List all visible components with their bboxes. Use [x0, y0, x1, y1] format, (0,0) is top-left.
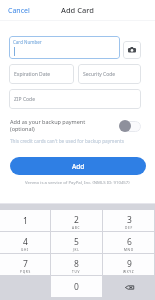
staticText: Venmo is a service of PayPal, Inc. (NMLS… — [25, 179, 130, 185]
staticText: PQRS — [20, 270, 31, 274]
staticText: 3 — [127, 214, 132, 226]
staticText: 1 — [23, 215, 28, 227]
staticText: ZIP Code — [14, 96, 35, 103]
button[interactable]: 9 — [103, 254, 154, 275]
button[interactable]: Backup payment toggle — [119, 120, 142, 132]
button[interactable]: ZIP Code — [9, 89, 141, 109]
button[interactable]: Card Number — [9, 36, 120, 59]
staticText: 9 — [127, 258, 132, 270]
staticText: Cancel — [8, 6, 30, 16]
button[interactable]: 1 — [0, 210, 50, 231]
button[interactable]: 4 — [0, 232, 50, 253]
staticText: Expiration Date — [14, 71, 51, 78]
button[interactable]: 2 — [51, 210, 102, 231]
staticText: 4 — [23, 236, 28, 248]
button[interactable]: Scan card — [123, 41, 141, 59]
staticText: Add — [72, 162, 85, 171]
button[interactable]: Security Code — [78, 64, 141, 84]
button[interactable]: Expiration Date — [9, 64, 74, 84]
staticText: This credit cards can't be used for back… — [10, 138, 124, 144]
staticText: 2 — [74, 214, 79, 226]
button[interactable]: Delete — [103, 276, 155, 298]
staticText: 8 — [74, 258, 79, 270]
staticText: MNO — [124, 248, 134, 252]
button[interactable]: Add — [10, 157, 146, 175]
staticText: (optional) — [10, 125, 35, 132]
button[interactable]: 7 — [0, 254, 50, 275]
staticText: Add as your backup payment — [10, 118, 86, 125]
staticText: JKL — [73, 248, 80, 252]
button[interactable]: Cancel — [4, 4, 34, 18]
staticText: 0 — [74, 281, 79, 293]
button[interactable]: 3 — [103, 210, 154, 231]
staticText: Card Number — [13, 39, 42, 45]
staticText: 7 — [23, 258, 28, 270]
staticText: TUV — [72, 270, 81, 274]
button[interactable]: 8 — [51, 254, 102, 275]
button[interactable]: 0 — [51, 276, 102, 297]
staticText: DEF — [125, 226, 133, 230]
staticText: Security Code — [83, 71, 116, 78]
staticText: 5 — [74, 236, 79, 248]
staticText: 6 — [127, 236, 132, 248]
button[interactable]: 5 — [51, 232, 102, 253]
staticText: GHI — [21, 248, 29, 252]
staticText: ABC — [72, 226, 81, 230]
staticText: WXYZ — [123, 270, 135, 274]
staticText: Add Card — [61, 5, 94, 15]
button[interactable]: 6 — [103, 232, 154, 253]
